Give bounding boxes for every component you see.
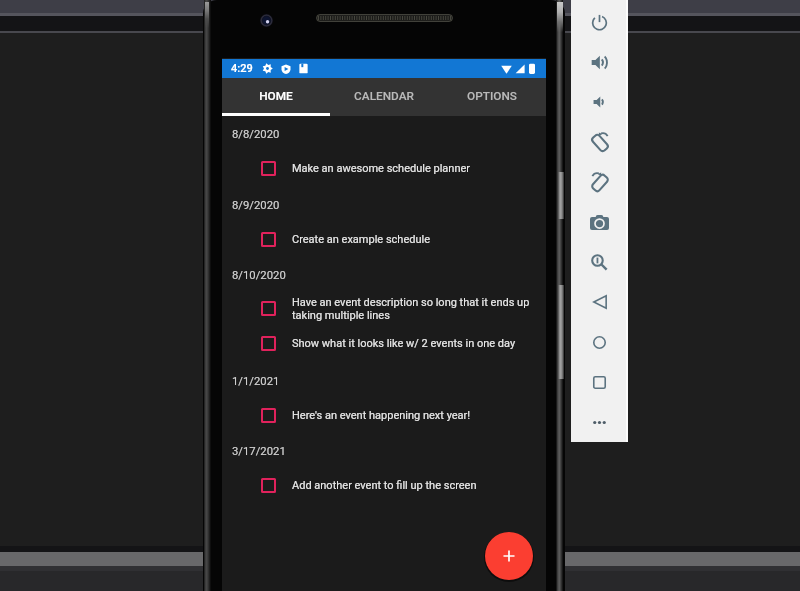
button[interactable]: Add another event to fill up the screen [261,468,536,503]
staticText: Make an awesome schedule planner [292,162,471,175]
staticText: Have an event description so long that i… [292,296,536,322]
staticText: 4:29 [231,62,253,75]
staticText: OPTIONS [467,89,517,103]
staticText: Create an example schedule [292,233,430,246]
staticText: HOME [259,89,293,103]
button[interactable]: Rotate left [571,122,628,162]
button[interactable]: Show what it looks like w/ 2 events in o… [261,326,536,361]
button[interactable]: Make an awesome schedule planner [261,151,536,186]
button[interactable]: OPTIONS [438,78,546,116]
staticText: Add another event to fill up the screen [292,479,477,492]
staticText: 1/1/2021 [232,375,280,388]
staticText: 8/10/2020 [232,269,286,282]
button[interactable]: Power [571,2,628,42]
staticText: 8/9/2020 [232,199,280,212]
button[interactable]: Create an example schedule [261,222,536,257]
button[interactable]: Rotate right [571,162,628,202]
button[interactable]: Home [571,322,628,362]
staticText: Here's an event happening next year! [292,409,471,422]
staticText: 3/17/2021 [232,445,286,458]
staticText: Show what it looks like w/ 2 events in o… [292,337,516,350]
staticText: CALENDAR [354,89,414,103]
button[interactable]: Back [571,282,628,322]
button[interactable]: More [571,402,628,442]
button[interactable]: Volume down [571,82,628,122]
staticText: 8/8/2020 [232,128,280,141]
button[interactable]: Here's an event happening next year! [261,398,536,433]
button[interactable]: Volume up [571,42,628,82]
button[interactable]: HOME [222,78,330,116]
button[interactable]: CALENDAR [330,78,438,116]
button[interactable]: Take screenshot [571,202,628,242]
button[interactable]: Have an event description so long that i… [261,291,536,326]
button[interactable]: Zoom [571,242,628,282]
button[interactable]: Add event [485,532,533,580]
button[interactable]: Overview [571,362,628,402]
